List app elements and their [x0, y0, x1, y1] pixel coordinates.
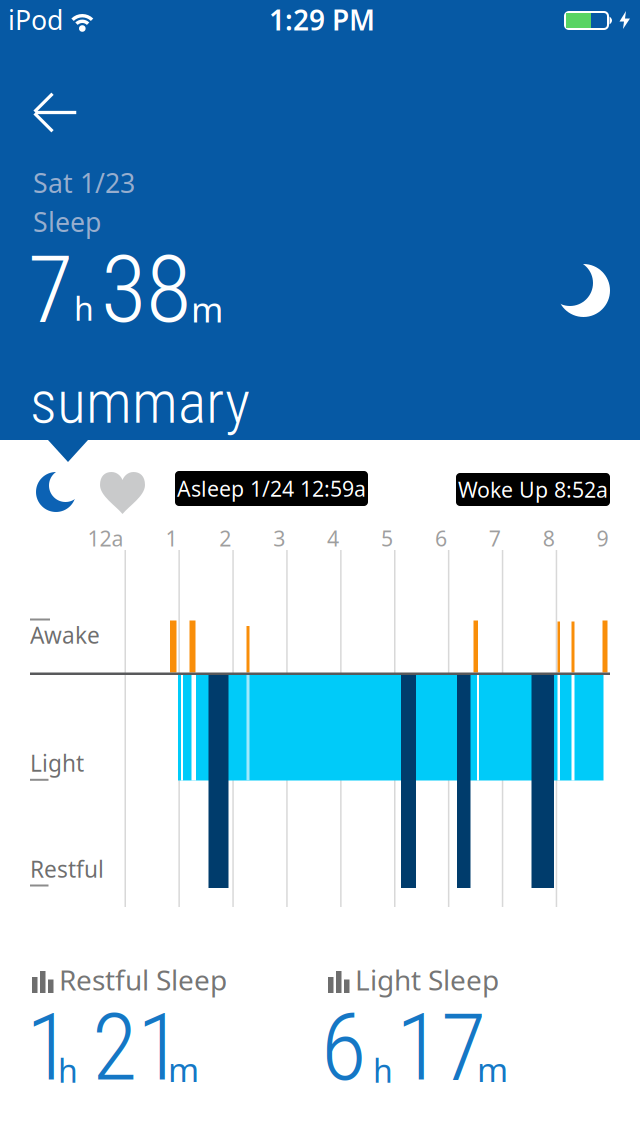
staticText: Asleep 1/24 12:59a [177, 474, 366, 503]
button[interactable]: Back [24, 84, 87, 142]
staticText: h [74, 287, 94, 329]
staticText: Awake [30, 620, 100, 650]
staticText: Woke Up 8:52a [458, 475, 608, 504]
staticText: h [58, 1049, 78, 1091]
staticText: 38 [101, 235, 191, 344]
staticText: 21 [92, 993, 182, 1102]
staticText: iPod [8, 2, 63, 37]
staticText: Sleep [33, 204, 101, 239]
staticText: 9 [597, 524, 609, 552]
staticText: 17 [396, 993, 486, 1102]
staticText: m [191, 286, 223, 332]
staticText: Light [30, 748, 84, 778]
button[interactable]: Asleep [36, 472, 76, 512]
staticText: m [477, 1047, 508, 1091]
staticText: 5 [381, 524, 393, 552]
staticText: 7 [489, 524, 501, 552]
staticText: Restful Sleep [59, 961, 227, 998]
staticText: 3 [273, 524, 285, 552]
staticText: 2 [219, 524, 231, 552]
staticText: 12a [87, 524, 123, 552]
staticText: h [373, 1049, 393, 1091]
staticText: 1 [26, 993, 71, 1102]
staticText: 1 [165, 524, 177, 552]
staticText: Light Sleep [355, 961, 499, 998]
staticText: 8 [543, 524, 555, 552]
staticText: 6 [321, 993, 366, 1102]
staticText: Sat 1/23 [33, 165, 135, 200]
button[interactable]: Favorite [100, 472, 145, 515]
staticText: 4 [327, 524, 339, 552]
staticText: 6 [435, 524, 447, 552]
staticText: summary [30, 367, 250, 437]
staticText: 7 [28, 235, 73, 344]
staticText: m [168, 1047, 199, 1091]
staticText: 1:29 PM [269, 1, 375, 38]
staticText: Restful [30, 854, 104, 884]
